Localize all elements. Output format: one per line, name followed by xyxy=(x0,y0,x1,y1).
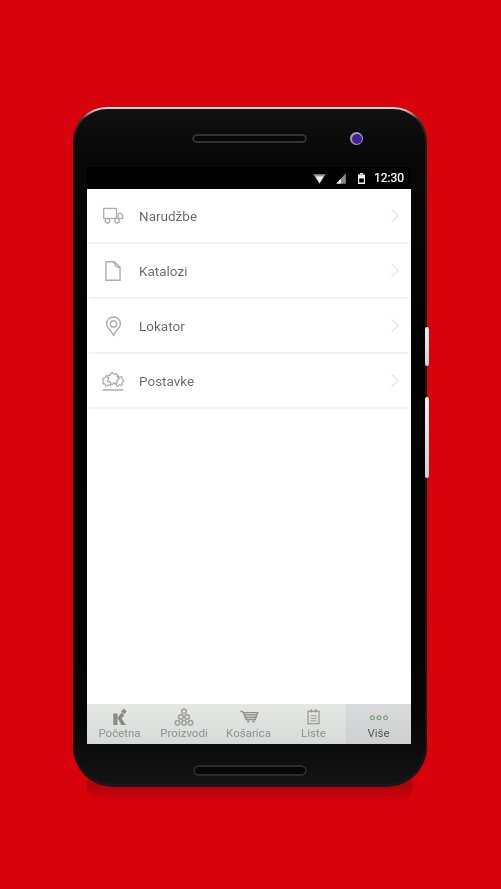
staticText: Katalozi xyxy=(139,263,188,279)
button[interactable]: Proizvodi xyxy=(151,704,216,744)
button[interactable]: Katalozi xyxy=(87,244,411,299)
button[interactable]: Narudžbe xyxy=(87,189,411,244)
button[interactable]: Početna xyxy=(87,704,151,744)
staticText: Lokator xyxy=(139,318,185,334)
button[interactable]: Liste xyxy=(281,704,346,744)
staticText: 12:30 xyxy=(374,171,404,185)
button[interactable]: Košarica xyxy=(216,704,281,744)
staticText: Liste xyxy=(301,726,326,739)
staticText: Više xyxy=(367,726,390,739)
staticText: Proizvodi xyxy=(160,726,208,739)
staticText: Narudžbe xyxy=(139,208,198,224)
button[interactable]: Postavke xyxy=(87,354,411,409)
staticText: Postavke xyxy=(139,373,195,389)
staticText: Košarica xyxy=(226,726,271,739)
staticText: Početna xyxy=(98,726,141,739)
button[interactable]: Više xyxy=(346,704,411,744)
button[interactable]: Lokator xyxy=(87,299,411,354)
